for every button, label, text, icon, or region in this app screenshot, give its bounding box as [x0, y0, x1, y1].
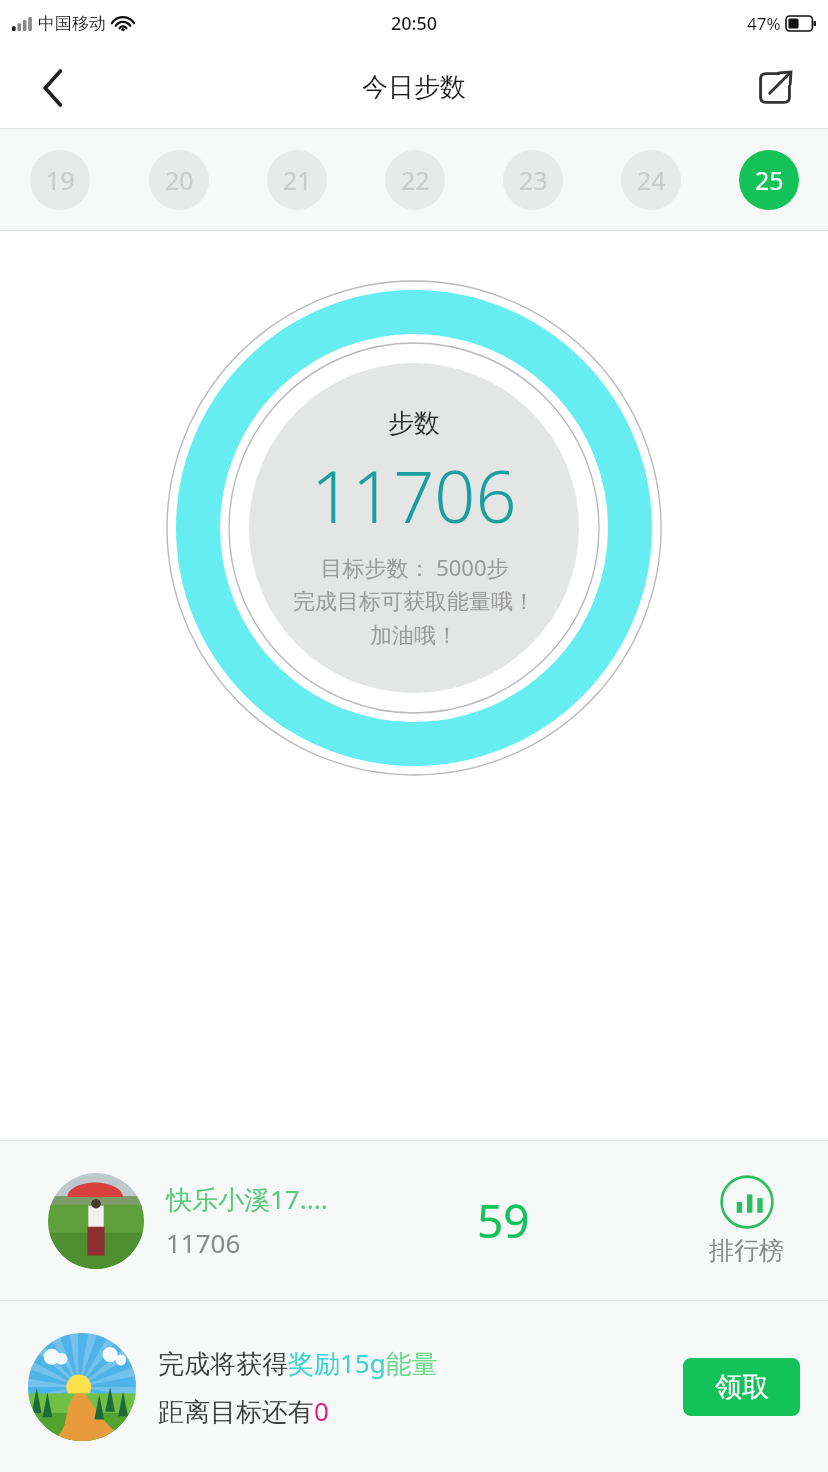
button[interactable]: 24 [621, 150, 681, 210]
staticText: 11706 [166, 1225, 241, 1260]
staticText: 完成将获得奖励15g能量 [158, 1345, 438, 1381]
staticText: 排行榜 [709, 1235, 784, 1266]
button[interactable]: 25 [739, 150, 799, 210]
staticText: 领取 [715, 1370, 769, 1404]
staticText: 47% [747, 12, 781, 35]
staticText: 21 [283, 163, 312, 197]
button[interactable]: Share [746, 59, 804, 117]
button[interactable]: 排行榜 [701, 1175, 792, 1266]
button[interactable]: 快乐小溪17.... [0, 1141, 828, 1300]
staticText: 快乐小溪17.... [166, 1181, 328, 1217]
staticText: 22 [401, 163, 430, 197]
staticText: 25 [755, 163, 784, 197]
button[interactable]: 19 [30, 150, 90, 210]
staticText: 步数 [388, 407, 440, 440]
staticText: 20:50 [391, 11, 438, 36]
staticText: 24 [637, 163, 666, 197]
staticText: 今日步数 [362, 71, 466, 104]
staticText: 59 [477, 1189, 530, 1252]
staticText: 中国移动 [38, 13, 106, 34]
button[interactable]: 21 [267, 150, 327, 210]
staticText: 加油哦！ [370, 622, 458, 650]
staticText: 11706 [311, 446, 517, 544]
staticText: 19 [46, 163, 75, 197]
button[interactable]: 22 [385, 150, 445, 210]
staticText: 23 [519, 163, 548, 197]
staticText: 目标步数： 5000步 [320, 552, 509, 582]
button[interactable]: 领取 [683, 1358, 800, 1416]
button[interactable]: 20 [149, 150, 209, 210]
staticText: 距离目标还有0 [158, 1393, 329, 1429]
button[interactable]: 23 [503, 150, 563, 210]
staticText: 完成目标可获取能量哦！ [293, 588, 535, 616]
button[interactable]: Back [26, 60, 82, 116]
staticText: 20 [165, 163, 194, 197]
